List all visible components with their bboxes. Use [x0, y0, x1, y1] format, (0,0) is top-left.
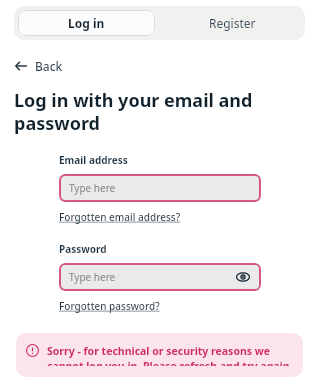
button[interactable]: Forgotten email address? [59, 210, 181, 224]
button[interactable]: Register [159, 6, 305, 40]
staticText: Sorry - for technical or security reason… [47, 344, 293, 366]
staticText: Log in with your email and password [14, 88, 305, 135]
staticText: Back [35, 58, 63, 74]
staticText: Type here [69, 270, 116, 284]
button[interactable]: Show password [235, 269, 251, 285]
button[interactable]: Type here [59, 263, 261, 291]
staticText: Log in [68, 15, 105, 31]
button[interactable]: Log in [18, 10, 155, 36]
staticText: Email address [59, 153, 128, 167]
staticText: Password [59, 242, 107, 256]
button[interactable]: Forgotten password? [59, 299, 160, 313]
button[interactable]: Type here [59, 174, 261, 202]
button[interactable]: Back [14, 56, 63, 76]
staticText: Register [209, 15, 256, 31]
staticText: Type here [69, 181, 116, 195]
